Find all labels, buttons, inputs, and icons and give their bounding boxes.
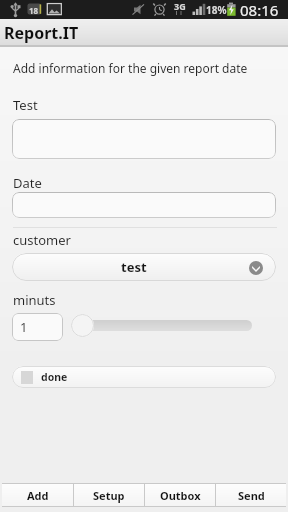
button[interactable]: Setup <box>74 484 144 506</box>
staticText: 18% <box>206 3 227 17</box>
staticText: Add information for the given report dat… <box>13 60 248 76</box>
button[interactable]: Send <box>216 484 286 506</box>
button[interactable]: Add <box>2 484 73 506</box>
button[interactable]: Outbox <box>145 484 215 506</box>
staticText: Date <box>13 174 42 192</box>
staticText: minuts <box>13 291 56 309</box>
staticText: Report.IT <box>4 22 79 44</box>
staticText: done <box>41 370 68 384</box>
button[interactable]: test <box>12 253 276 281</box>
staticText: Outbox <box>160 488 201 503</box>
staticText: Setup <box>93 488 125 503</box>
staticText: 08:16 <box>240 0 279 19</box>
staticText: Send <box>238 488 265 503</box>
button[interactable]: Minutes slider <box>71 314 94 337</box>
staticText: Add <box>27 488 49 503</box>
staticText: Test <box>13 96 38 114</box>
button[interactable] <box>12 119 276 159</box>
staticText: 3G <box>174 0 186 12</box>
button[interactable]: 1 <box>12 313 63 341</box>
staticText: 1 <box>20 318 28 336</box>
button[interactable]: done <box>12 366 276 388</box>
staticText: test <box>121 258 147 276</box>
button[interactable] <box>12 192 276 218</box>
staticText: 18 <box>29 5 39 16</box>
staticText: customer <box>13 231 71 249</box>
